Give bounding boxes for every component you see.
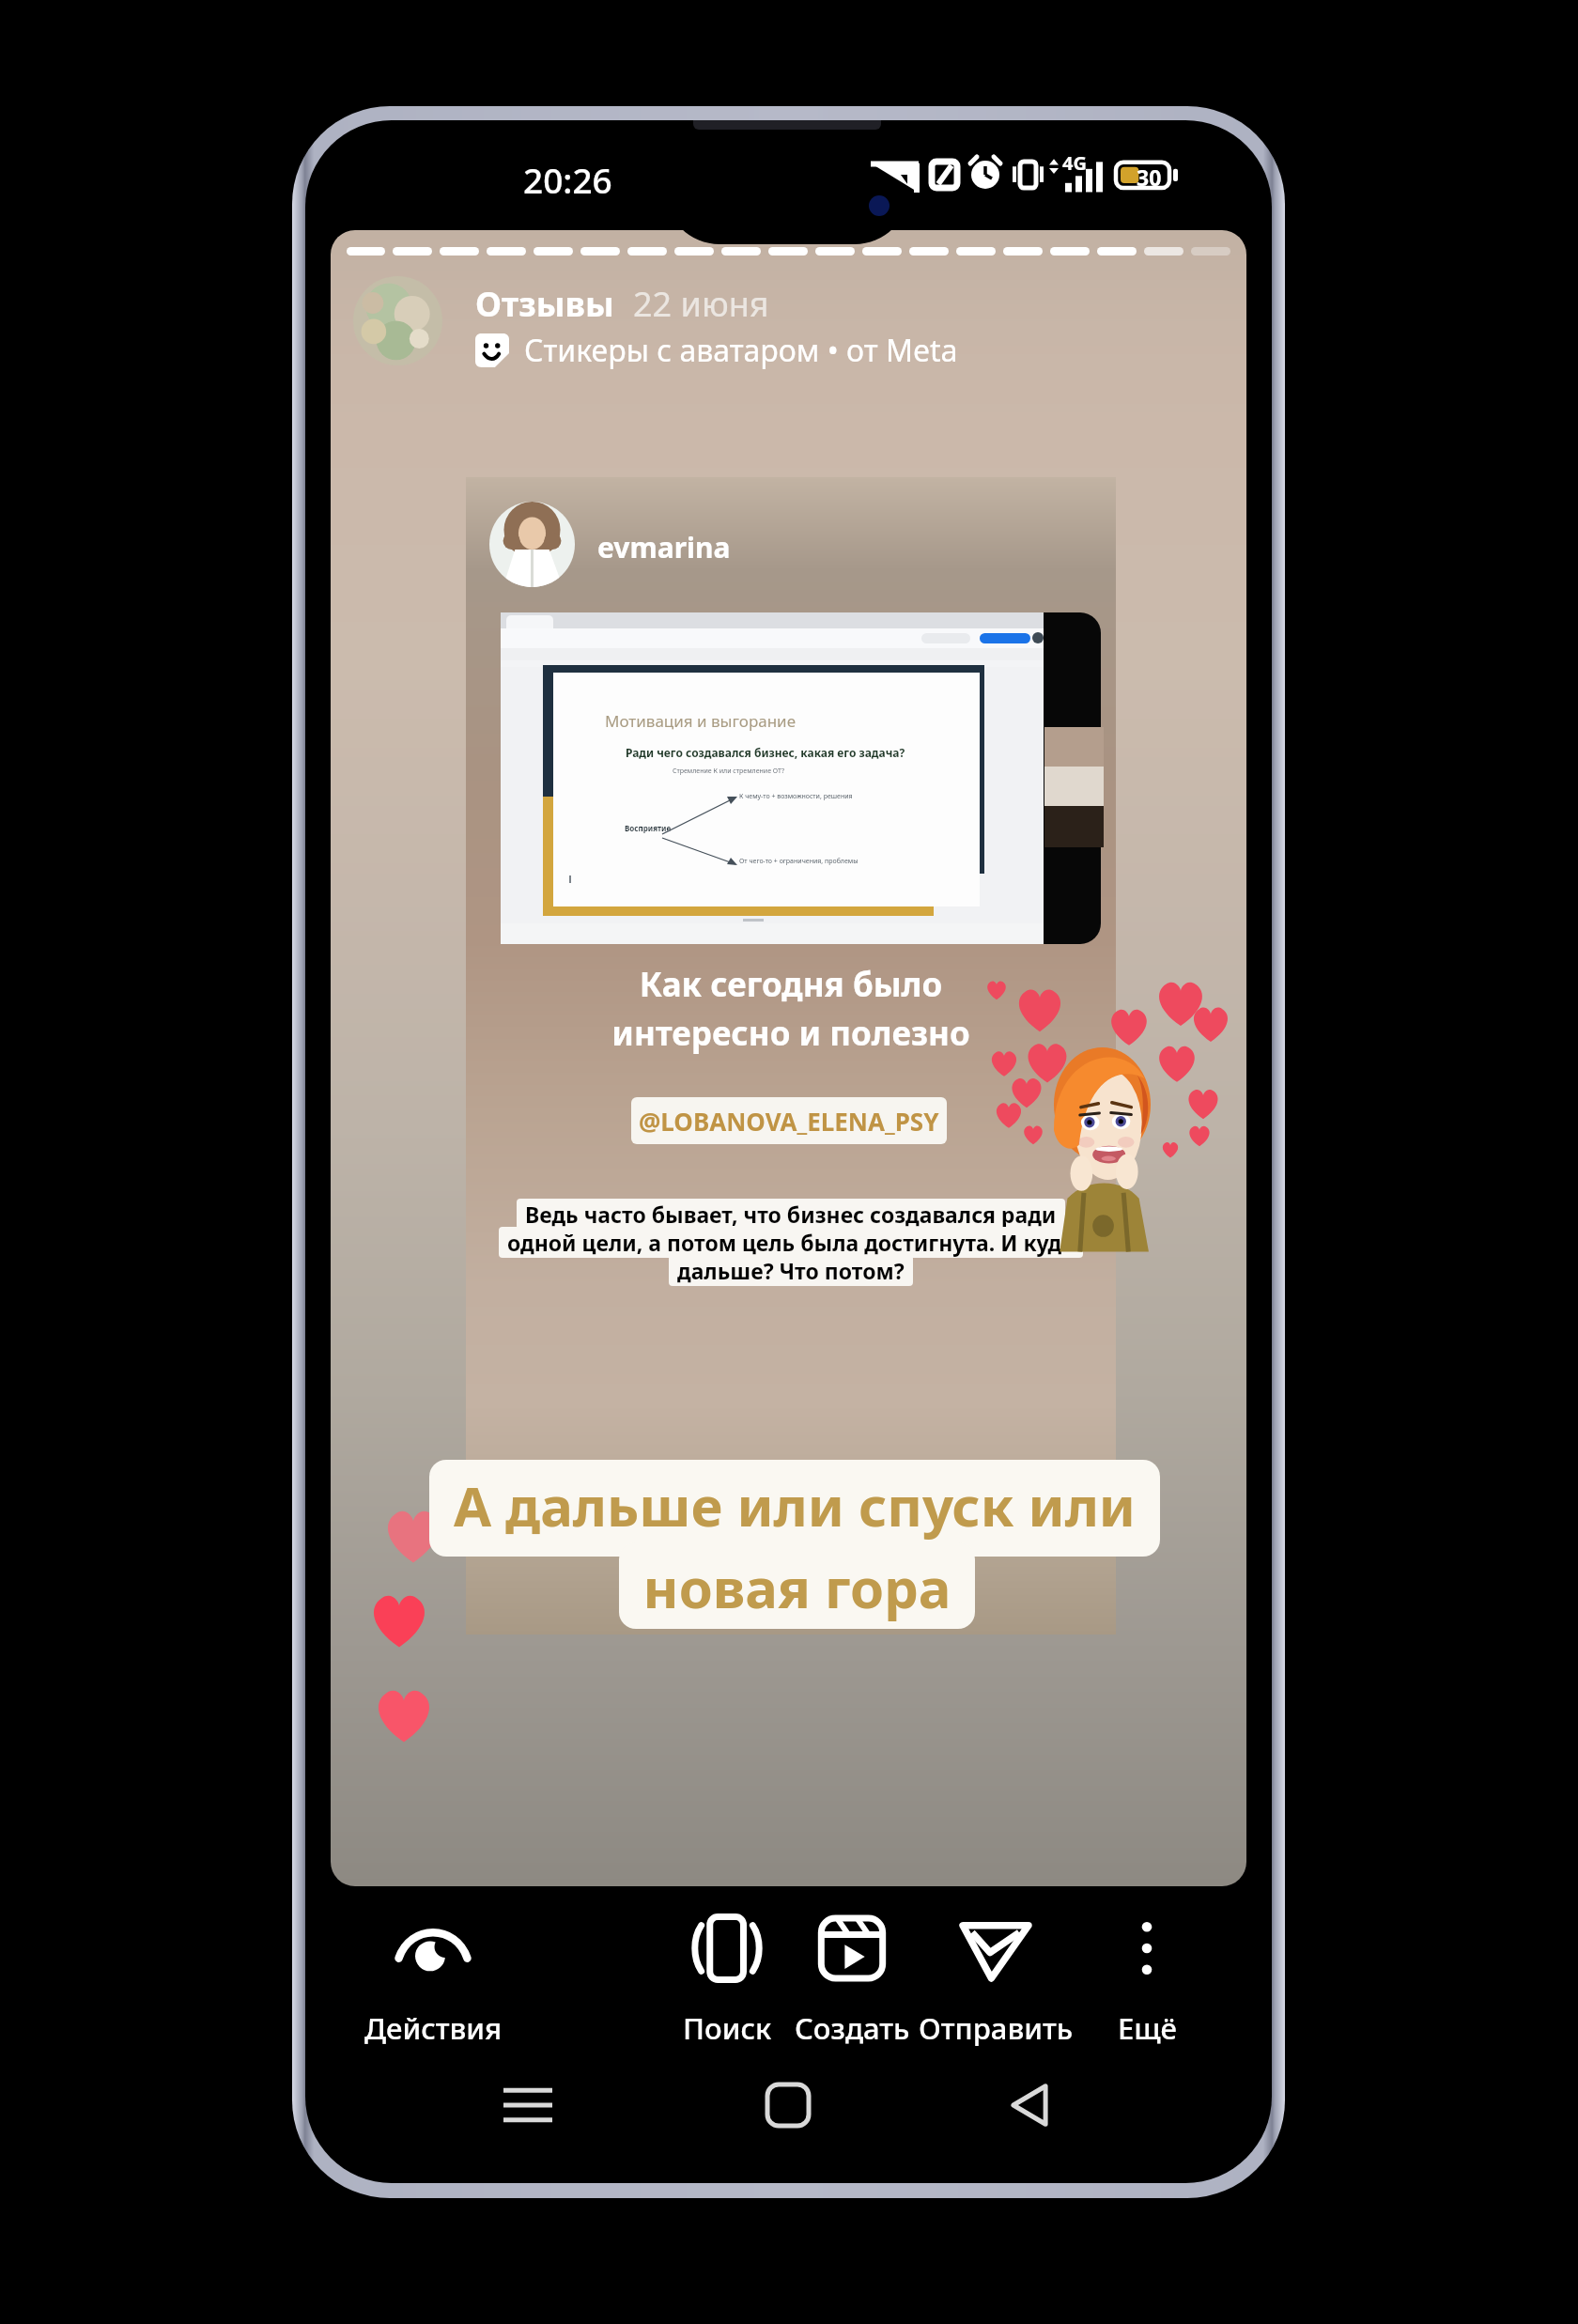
- button[interactable]: @LOBANOVA_ELENA_PSY: [631, 1097, 947, 1144]
- staticText: Восприятие: [625, 823, 672, 833]
- staticText: Отправить: [919, 2008, 1074, 2048]
- staticText: дальше? Что потом?: [677, 1256, 905, 1285]
- button[interactable]: Home: [736, 2053, 840, 2157]
- staticText: К чему-то + возможности, решения: [739, 792, 853, 801]
- button[interactable]: Ещё: [1086, 1913, 1208, 2048]
- staticText: Поиск: [683, 2008, 772, 2048]
- staticText: evmarina: [597, 528, 731, 566]
- button[interactable]: Создать: [772, 1913, 932, 2048]
- button[interactable]: Open profile Отзывы: [353, 276, 442, 365]
- staticText: А дальше или спуск или: [429, 1468, 1160, 1542]
- staticText: одной цели, а потом цель была достигнута…: [507, 1228, 1075, 1257]
- staticText: новая гора: [619, 1550, 975, 1624]
- staticText: Как сегодня было: [466, 962, 1116, 1007]
- button[interactable]: Действия: [325, 1913, 541, 2048]
- button[interactable]: Поиск: [657, 1913, 797, 2048]
- staticText: Ещё: [1118, 2008, 1177, 2048]
- staticText: От чего-то + ограничения, проблемы: [739, 857, 859, 866]
- staticText: Действия: [364, 2008, 503, 2048]
- button[interactable]: Отправить: [897, 1913, 1094, 2048]
- staticText: Стикеры с аватаром • от Meta: [524, 330, 958, 371]
- staticText: 20:26: [523, 156, 612, 203]
- staticText: Отзывы: [475, 281, 614, 327]
- staticText: 4G: [1062, 150, 1087, 176]
- staticText: Создать: [795, 2008, 910, 2048]
- staticText: @LOBANOVA_ELENA_PSY: [639, 1105, 939, 1138]
- staticText: 22 июня: [633, 281, 769, 327]
- button[interactable]: Back: [978, 2053, 1081, 2157]
- staticText: Ради чего создавался бизнес, какая его з…: [626, 745, 905, 760]
- staticText: 30: [1137, 163, 1162, 192]
- staticText: интересно и полезно: [466, 1011, 1116, 1056]
- staticText: Ведь часто бывает, что бизнес создавался…: [525, 1200, 1057, 1229]
- staticText: Мотивация и выгорание: [605, 710, 797, 732]
- staticText: Стремление К или стремление ОТ?: [673, 767, 784, 776]
- button[interactable]: Recent apps: [476, 2053, 580, 2157]
